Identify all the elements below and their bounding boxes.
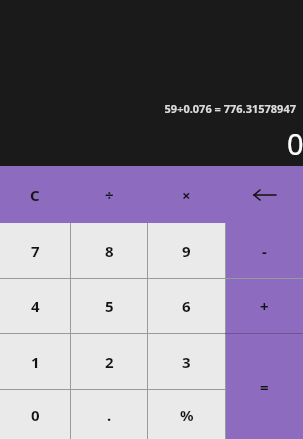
button[interactable]: % <box>148 390 225 439</box>
staticText: - <box>262 241 267 261</box>
staticText: + <box>260 296 269 316</box>
staticText: 1 <box>31 352 40 372</box>
staticText: 8 <box>105 241 114 261</box>
button[interactable]: 8 <box>71 223 147 278</box>
button[interactable]: + <box>226 279 303 333</box>
button[interactable]: = <box>226 334 303 439</box>
button[interactable]: Backspace <box>226 166 303 223</box>
staticText: 2 <box>105 352 114 372</box>
staticText: 59÷0.076 = 776.31578947 <box>164 101 296 116</box>
staticText: 6 <box>182 296 191 316</box>
button[interactable]: 6 <box>148 279 225 333</box>
staticText: % <box>180 405 194 425</box>
button[interactable]: 1 <box>0 334 70 389</box>
button[interactable]: 5 <box>71 279 147 333</box>
staticText: C <box>30 185 40 205</box>
button[interactable]: . <box>71 390 147 439</box>
staticText: × <box>182 185 191 205</box>
button[interactable]: 9 <box>148 223 225 278</box>
staticText: 9 <box>182 241 191 261</box>
staticText: 0 <box>287 124 303 160</box>
button[interactable]: - <box>226 223 303 278</box>
staticText: 4 <box>31 296 40 316</box>
button[interactable]: C <box>0 166 70 223</box>
staticText: 0 <box>31 405 40 425</box>
button[interactable]: ÷ <box>71 166 147 223</box>
button[interactable]: 7 <box>0 223 70 278</box>
button[interactable]: 3 <box>148 334 225 389</box>
staticText: = <box>260 377 269 397</box>
button[interactable]: 0 <box>0 390 70 439</box>
staticText: 5 <box>105 296 114 316</box>
staticText: 3 <box>182 352 191 372</box>
staticText: ÷ <box>105 185 114 205</box>
button[interactable]: 4 <box>0 279 70 333</box>
button[interactable]: 2 <box>71 334 147 389</box>
staticText: . <box>107 405 112 425</box>
staticText: 7 <box>31 241 40 261</box>
button[interactable]: × <box>148 166 225 223</box>
